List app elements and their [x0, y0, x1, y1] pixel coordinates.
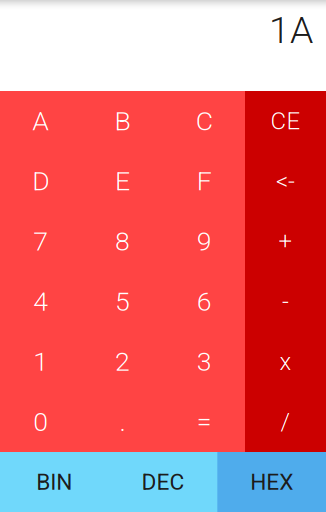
staticText: BIN	[36, 469, 72, 495]
button[interactable]: D	[0, 151, 82, 211]
button[interactable]: 5	[82, 271, 163, 332]
staticText: <-	[276, 167, 295, 195]
staticText: .	[119, 406, 125, 438]
staticText: C	[196, 105, 213, 137]
staticText: 8	[115, 226, 130, 257]
button[interactable]: C	[163, 91, 245, 151]
staticText: 9	[197, 226, 212, 257]
button[interactable]: 9	[163, 211, 245, 271]
button[interactable]: +	[245, 211, 326, 271]
button[interactable]: DEC	[109, 452, 217, 512]
button[interactable]: HEX	[217, 452, 326, 512]
staticText: F	[197, 166, 212, 197]
button[interactable]: 6	[163, 271, 245, 332]
staticText: 2	[115, 346, 130, 377]
button[interactable]: <-	[245, 151, 326, 211]
staticText: =	[197, 406, 212, 438]
staticText: +	[278, 227, 292, 255]
staticText: /	[280, 408, 290, 436]
button[interactable]: 8	[82, 211, 163, 271]
staticText: 1	[33, 346, 48, 377]
button[interactable]: E	[82, 151, 163, 211]
staticText: HEX	[250, 469, 293, 495]
staticText: 6	[197, 286, 212, 317]
staticText: E	[115, 166, 130, 197]
button[interactable]: 3	[163, 332, 245, 392]
staticText: 0	[33, 406, 48, 438]
staticText: A	[32, 105, 49, 137]
button[interactable]: A	[0, 91, 82, 151]
staticText: B	[114, 105, 130, 137]
staticText: 3	[197, 346, 212, 377]
button[interactable]: /	[245, 392, 326, 452]
staticText: x	[279, 348, 291, 376]
staticText: 7	[33, 226, 48, 257]
button[interactable]: 2	[82, 332, 163, 392]
staticText: 4	[33, 286, 48, 317]
staticText: -	[282, 287, 289, 316]
button[interactable]: -	[245, 271, 326, 332]
button[interactable]: 1	[0, 332, 82, 392]
staticText: CE	[270, 107, 300, 135]
button[interactable]: 0	[0, 392, 82, 452]
button[interactable]: =	[163, 392, 245, 452]
button[interactable]: CE	[245, 91, 326, 151]
staticText: DEC	[141, 469, 184, 495]
button[interactable]: x	[245, 332, 326, 392]
staticText: D	[32, 166, 49, 197]
button[interactable]: B	[82, 91, 163, 151]
staticText: 5	[115, 286, 130, 317]
button[interactable]: 4	[0, 271, 82, 332]
staticText: 1A	[269, 8, 313, 52]
button[interactable]: BIN	[0, 452, 109, 512]
button[interactable]: F	[163, 151, 245, 211]
button[interactable]: 7	[0, 211, 82, 271]
button[interactable]: .	[82, 392, 163, 452]
